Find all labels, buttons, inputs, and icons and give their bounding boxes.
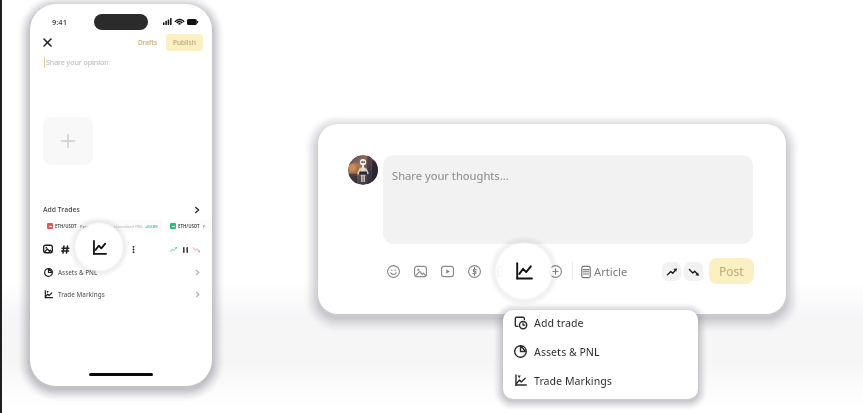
button[interactable]: Trade chart — [522, 265, 535, 278]
staticText: Add Trades — [43, 205, 80, 214]
staticText: ETH/USDT — [178, 223, 200, 229]
button[interactable]: Trade Markings — [44, 285, 201, 303]
button[interactable]: Add trade — [514, 313, 698, 332]
staticText: Trade Markings — [534, 374, 612, 388]
button[interactable]: ETH/USDT — [47, 220, 160, 232]
button[interactable]: Assets & PNL — [44, 263, 201, 281]
staticText: Trade Markings — [58, 290, 105, 299]
button[interactable]: Emoji — [387, 265, 400, 278]
staticText: Unrealized PNL — [114, 224, 143, 229]
button[interactable]: Image — [43, 244, 53, 254]
button[interactable]: Add Trades — [43, 201, 201, 218]
button[interactable]: Image — [414, 265, 427, 278]
button[interactable]: Add media — [43, 117, 93, 165]
button[interactable]: Long — [169, 245, 178, 254]
button[interactable]: ETH/USDT — [170, 220, 209, 232]
staticText: Share your thoughts... — [392, 168, 509, 183]
button[interactable]: More — [129, 245, 138, 254]
staticText: Post — [719, 263, 744, 279]
staticText: Share your opinion — [46, 58, 109, 68]
button[interactable]: Long — [662, 262, 681, 281]
staticText: 9:41 — [52, 17, 67, 27]
button[interactable]: Short — [192, 245, 201, 254]
button[interactable]: Close — [41, 36, 54, 49]
staticText: Assets & PNL — [58, 268, 98, 277]
button[interactable]: Profile picture — [348, 155, 378, 185]
button[interactable]: Price — [468, 265, 481, 278]
button[interactable]: Drafts — [135, 35, 161, 50]
button[interactable]: Publish — [166, 34, 203, 51]
staticText: P — [203, 224, 206, 229]
staticText: Drafts — [138, 38, 158, 47]
button[interactable]: Trade Markings — [514, 371, 698, 390]
button[interactable]: Video — [441, 265, 454, 278]
button[interactable]: Poll — [495, 265, 508, 278]
staticText: Assets & PNL — [534, 345, 600, 359]
button[interactable]: Trade chart — [92, 240, 107, 255]
button[interactable]: Trade chart — [515, 262, 533, 280]
button[interactable]: More — [549, 265, 562, 278]
button[interactable]: Article — [579, 264, 628, 279]
staticText: +63.89 — [145, 224, 158, 229]
staticText: Article — [594, 264, 628, 279]
button[interactable]: Assets & PNL — [514, 342, 698, 361]
button[interactable]: Share your thoughts... — [383, 155, 753, 244]
staticText: Add trade — [534, 316, 584, 330]
button[interactable]: Hashtag — [61, 245, 70, 254]
button[interactable]: Pause — [179, 243, 191, 256]
button[interactable]: Post — [709, 258, 754, 284]
button[interactable]: Chart — [94, 242, 109, 257]
staticText: ETH/USDT — [55, 223, 77, 229]
staticText: Perp — [80, 224, 89, 229]
staticText: Publish — [173, 38, 196, 47]
button[interactable]: Short — [684, 262, 703, 281]
